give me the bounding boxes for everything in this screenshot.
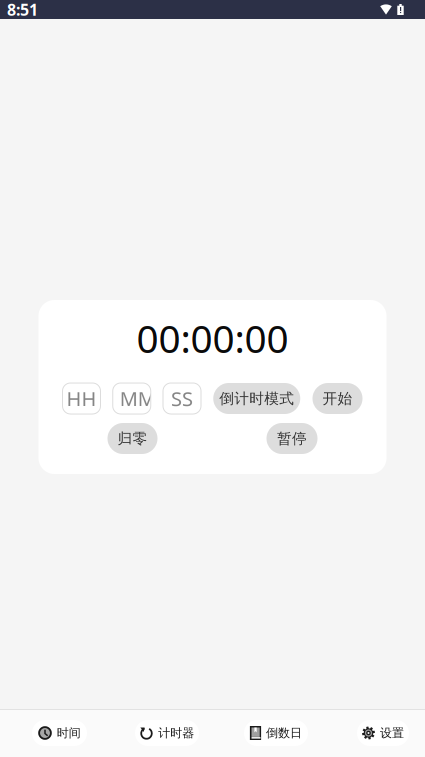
staticText: MM (120, 385, 156, 412)
staticText: 倒数日 (266, 726, 302, 740)
staticText: 00:00:00 (136, 312, 288, 364)
button[interactable]: 计时器 (135, 720, 199, 746)
staticText: HH (66, 385, 96, 412)
staticText: 8:51 (7, 0, 38, 20)
button[interactable]: 倒计时模式 (213, 383, 300, 414)
staticText: 开始 (322, 389, 352, 407)
staticText: 设置 (380, 726, 404, 740)
button[interactable]: 暂停 (266, 423, 317, 454)
staticText: SS (171, 385, 193, 412)
button[interactable]: 设置 (357, 720, 409, 746)
staticText: 暂停 (277, 429, 307, 447)
button[interactable]: 倒数日 (244, 720, 308, 746)
button[interactable]: 时间 (32, 720, 87, 746)
staticText: 时间 (57, 726, 81, 740)
button[interactable]: 归零 (107, 423, 157, 454)
button[interactable]: 开始 (312, 383, 362, 414)
staticText: 计时器 (158, 726, 194, 740)
staticText: 归零 (117, 429, 147, 447)
staticText: 倒计时模式 (219, 389, 294, 407)
